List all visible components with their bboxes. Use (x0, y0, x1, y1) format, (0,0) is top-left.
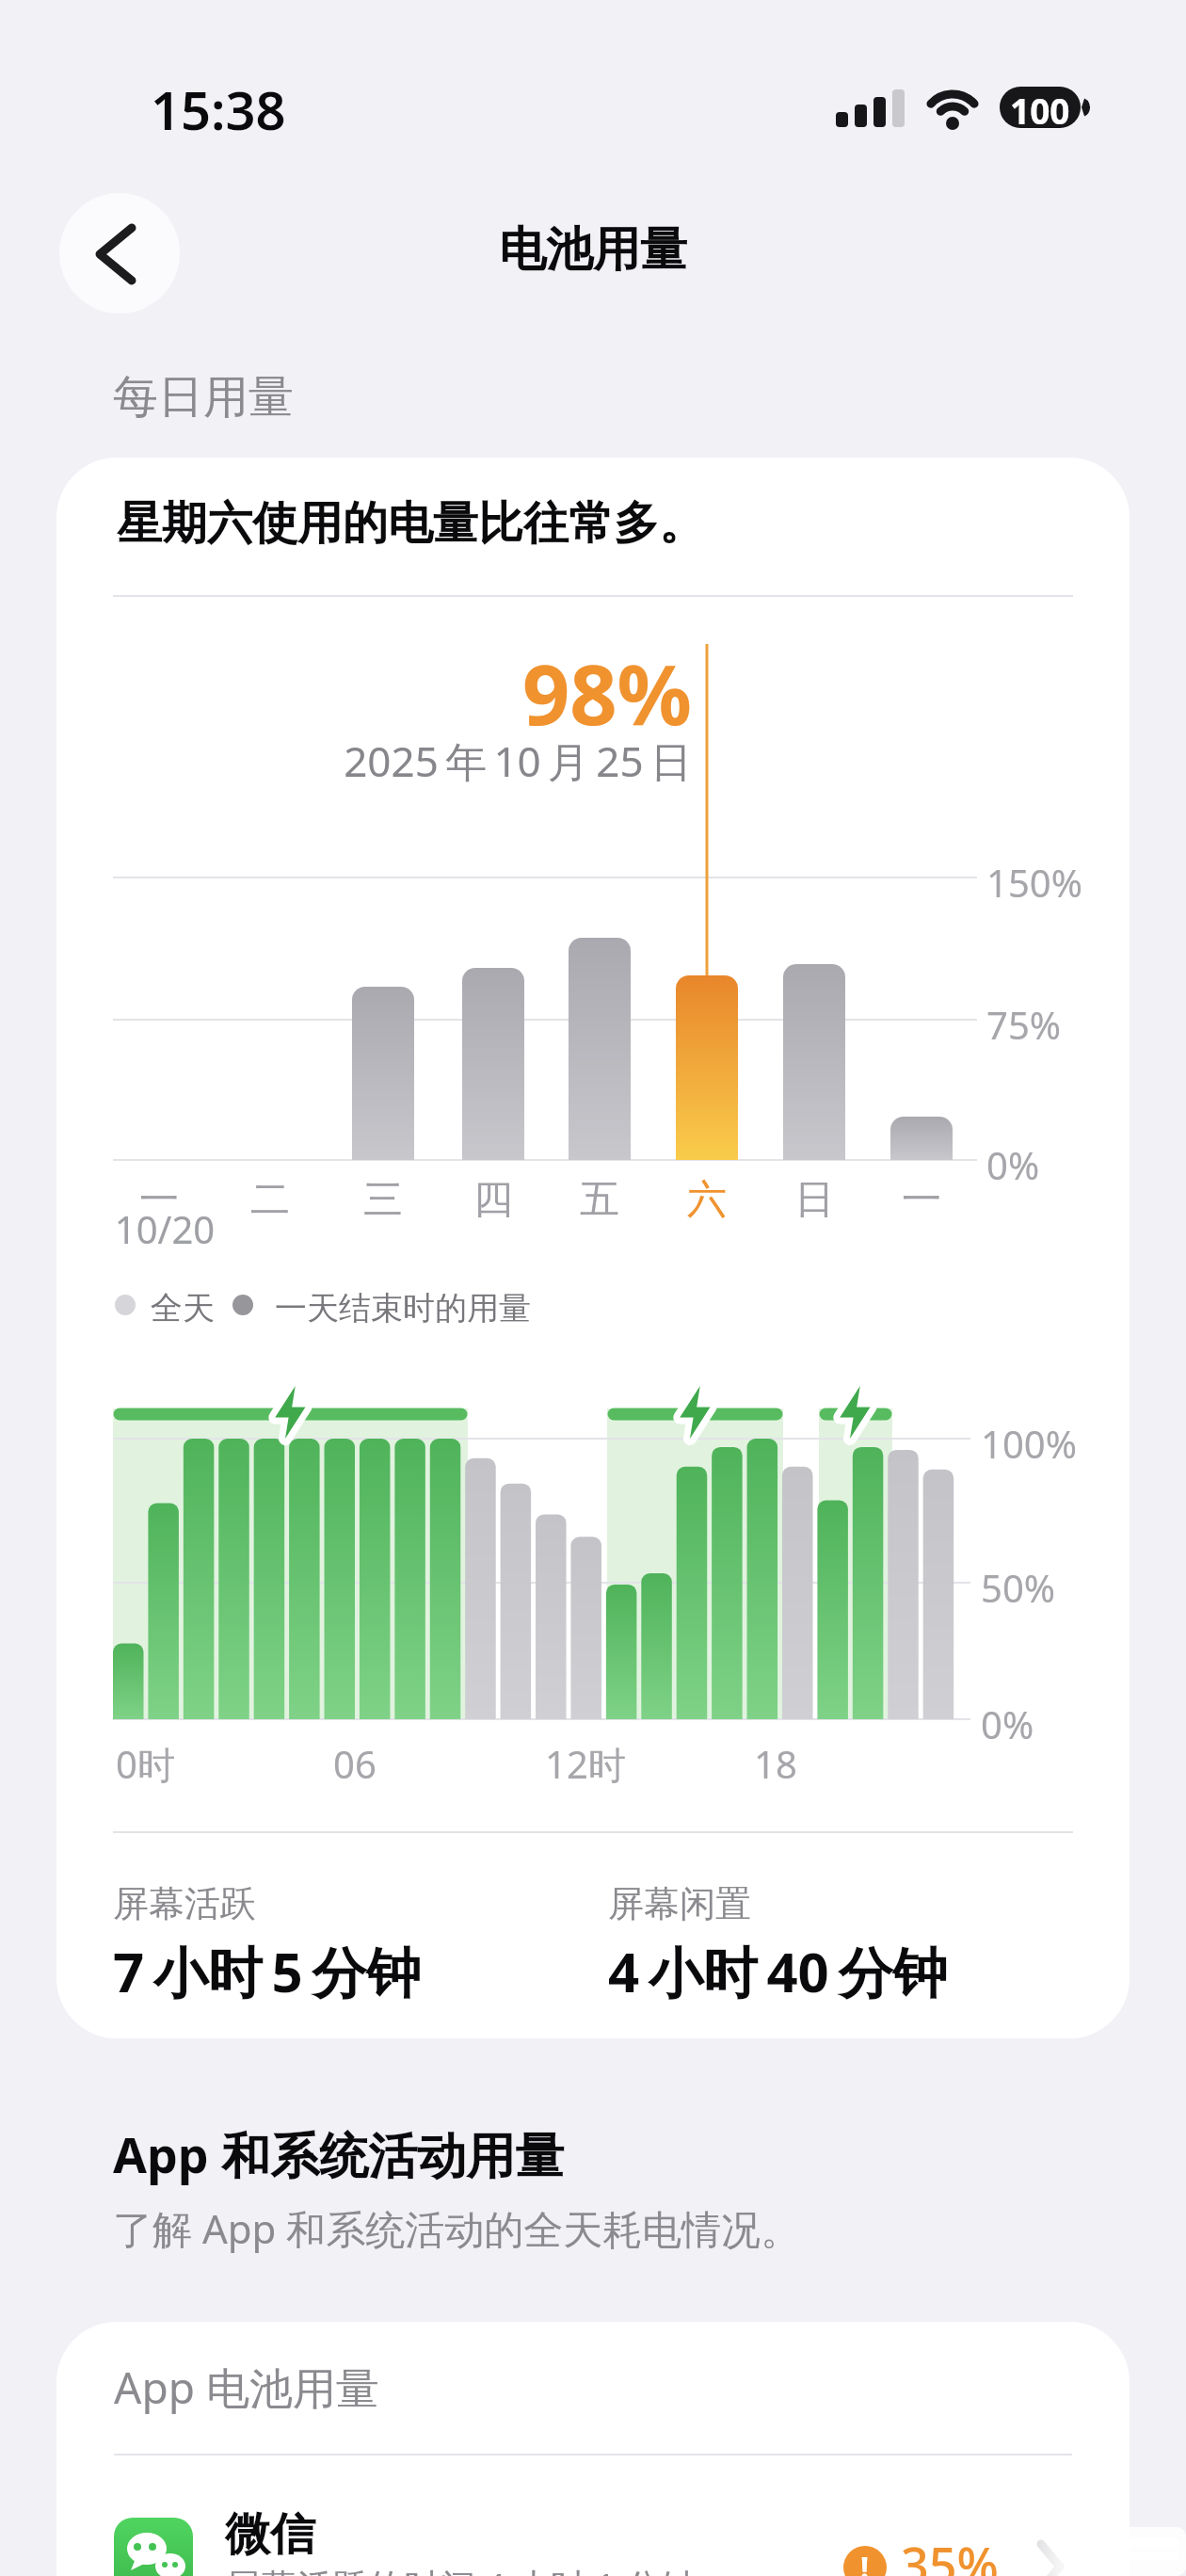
staticText: 二 (232, 1175, 308, 1225)
staticText: 35% (901, 2531, 999, 2576)
staticText: 10/20 (108, 1203, 221, 1254)
staticText: 一天结束时的用量 (275, 1288, 531, 1328)
staticText: 100% (981, 1418, 1077, 1469)
staticText: 06 (317, 1738, 393, 1789)
staticText: 五 (562, 1175, 637, 1225)
staticText: App 和系统活动用量 (113, 2120, 565, 2187)
staticText: 全天 (151, 1288, 215, 1328)
staticText: 电池用量 (0, 220, 1186, 280)
staticText: 三 (345, 1175, 421, 1225)
staticText: 150% (986, 857, 1082, 908)
staticText: 4 小时 40 分钟 (608, 1934, 948, 2008)
staticText: 微信 (225, 2506, 315, 2563)
button[interactable] (56, 2482, 1130, 2576)
staticText: 屏幕闲置 (608, 1881, 751, 1926)
staticText: 50% (981, 1562, 1055, 1613)
staticText: 四 (456, 1175, 531, 1225)
staticText: 100 (1010, 87, 1070, 128)
staticText: 98% (127, 636, 692, 749)
staticText: 0% (981, 1699, 1034, 1749)
staticText: ! (860, 2547, 870, 2576)
staticText: 屏幕活跃 (113, 1881, 256, 1926)
staticText: 星期六使用的电量比往常多。 (117, 495, 704, 552)
staticText: 六 (669, 1175, 745, 1225)
staticText: 15:38 (151, 73, 286, 145)
staticText: 18 (738, 1738, 813, 1789)
staticText: 2025 年 10 月 25 日 (127, 733, 692, 789)
staticText: 一 (121, 1175, 197, 1225)
staticText: App 电池用量 (114, 2358, 379, 2417)
staticText: 一 (884, 1175, 959, 1225)
staticText: 0% (986, 1139, 1040, 1190)
staticText: 75% (986, 999, 1061, 1050)
staticText: 日 (777, 1175, 852, 1225)
staticText: 7 小时 5 分钟 (113, 1934, 422, 2008)
staticText: 了解 App 和系统活动的全天耗电情况。 (113, 2201, 801, 2255)
staticText: 屏幕活跃的时间 4 小时 1 分钟 (225, 2561, 697, 2576)
button[interactable] (59, 193, 180, 314)
staticText: 0时 (116, 1738, 175, 1790)
staticText: 12时 (545, 1738, 626, 1790)
staticText: 每日用量 (113, 369, 294, 426)
